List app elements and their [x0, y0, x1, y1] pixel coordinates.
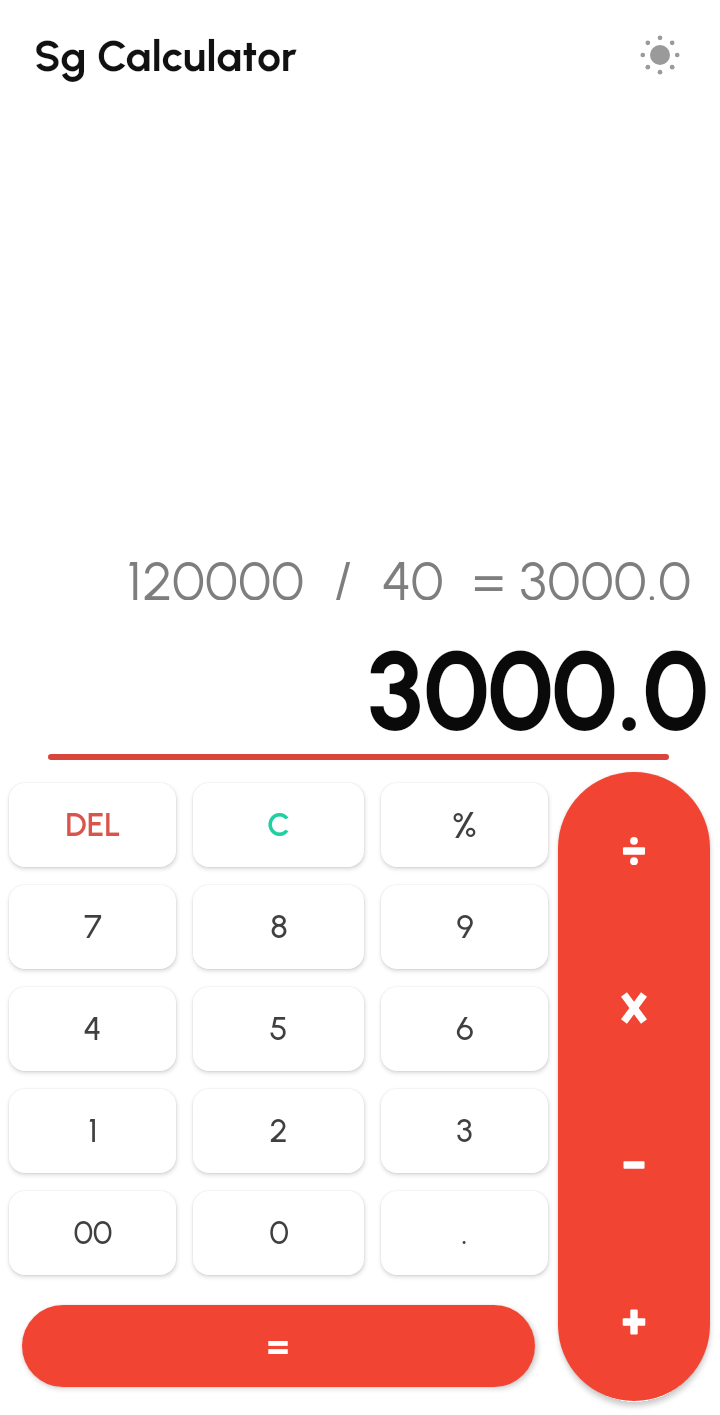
- button[interactable]: %: [381, 783, 548, 867]
- button[interactable]: Toggle theme: [616, 11, 704, 99]
- staticText: 9: [456, 907, 474, 947]
- staticText: %: [452, 803, 477, 847]
- button[interactable]: C: [193, 783, 364, 867]
- button[interactable]: 6: [381, 987, 548, 1071]
- button[interactable]: 0: [193, 1191, 364, 1275]
- button[interactable]: 8: [193, 885, 364, 969]
- staticText: 3000.0: [367, 625, 709, 757]
- button[interactable]: 1: [9, 1089, 176, 1173]
- button[interactable]: 3: [381, 1089, 548, 1173]
- staticText: C: [267, 806, 290, 844]
- button[interactable]: =: [22, 1305, 535, 1387]
- button[interactable]: minus: [558, 1086, 710, 1243]
- button[interactable]: divide: [558, 772, 710, 929]
- staticText: =: [267, 1323, 290, 1369]
- button[interactable]: 5: [193, 987, 364, 1071]
- staticText: 00: [73, 1213, 113, 1253]
- staticText: 1: [88, 1111, 98, 1151]
- staticText: .: [461, 1213, 468, 1253]
- staticText: 2: [269, 1111, 288, 1151]
- staticText: 8: [270, 907, 288, 947]
- staticText: 6: [456, 1009, 474, 1049]
- button[interactable]: 9: [381, 885, 548, 969]
- button[interactable]: 7: [9, 885, 176, 969]
- button[interactable]: .: [381, 1191, 548, 1275]
- button[interactable]: 4: [9, 987, 176, 1071]
- button[interactable]: 2: [193, 1089, 364, 1173]
- staticText: 120000 / 40 = 3000.0: [127, 548, 692, 600]
- button[interactable]: plus: [558, 1243, 710, 1400]
- button[interactable]: DEL: [9, 783, 176, 867]
- staticText: Sg Calculator: [34, 30, 298, 82]
- button[interactable]: 00: [9, 1191, 176, 1275]
- button[interactable]: multiply: [558, 929, 710, 1086]
- staticText: 4: [83, 1009, 102, 1049]
- staticText: 7: [84, 907, 102, 947]
- staticText: 0: [269, 1213, 289, 1253]
- staticText: DEL: [65, 806, 121, 844]
- staticText: 5: [269, 1009, 288, 1049]
- staticText: 3: [456, 1111, 473, 1151]
